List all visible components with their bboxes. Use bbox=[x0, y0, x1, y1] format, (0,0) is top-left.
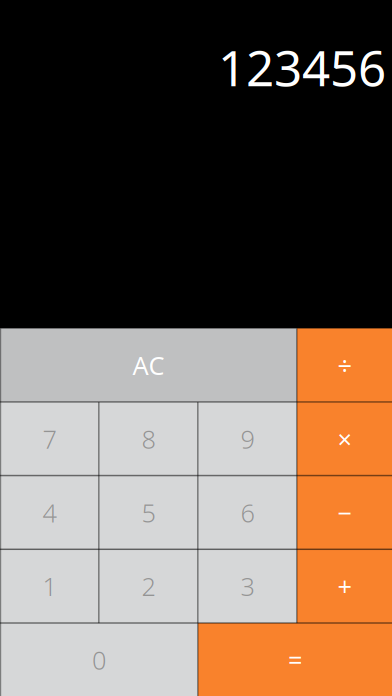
staticText: 5 bbox=[141, 496, 155, 529]
staticText: × bbox=[337, 422, 351, 456]
staticText: ÷ bbox=[337, 348, 351, 382]
button[interactable]: 2 bbox=[99, 549, 198, 623]
button[interactable]: 1 bbox=[0, 549, 99, 623]
staticText: 3 bbox=[240, 569, 254, 603]
button[interactable]: Equals bbox=[198, 623, 392, 696]
staticText: 123456 bbox=[218, 34, 386, 100]
button[interactable]: Add bbox=[297, 549, 392, 623]
staticText: 6 bbox=[240, 496, 254, 529]
staticText: − bbox=[337, 496, 351, 529]
staticText: 7 bbox=[42, 422, 56, 456]
button[interactable]: 9 bbox=[198, 402, 297, 476]
button[interactable]: 6 bbox=[198, 476, 297, 549]
staticText: = bbox=[288, 643, 302, 677]
button[interactable]: 5 bbox=[99, 476, 198, 549]
staticText: 9 bbox=[240, 422, 254, 456]
staticText: 2 bbox=[141, 569, 155, 603]
button[interactable]: All clear bbox=[0, 328, 297, 402]
staticText: 4 bbox=[42, 496, 56, 529]
staticText: AC bbox=[132, 348, 164, 382]
button[interactable]: 8 bbox=[99, 402, 198, 476]
button[interactable]: 7 bbox=[0, 402, 99, 476]
staticText: 8 bbox=[141, 422, 155, 456]
button[interactable]: 4 bbox=[0, 476, 99, 549]
button[interactable]: Divide bbox=[297, 328, 392, 402]
button[interactable]: Subtract bbox=[297, 476, 392, 549]
button[interactable]: Multiply bbox=[297, 402, 392, 476]
button[interactable]: 0 bbox=[0, 623, 198, 696]
staticText: + bbox=[337, 569, 351, 603]
button[interactable]: 3 bbox=[198, 549, 297, 623]
staticText: 0 bbox=[92, 643, 106, 677]
staticText: 1 bbox=[42, 569, 56, 603]
